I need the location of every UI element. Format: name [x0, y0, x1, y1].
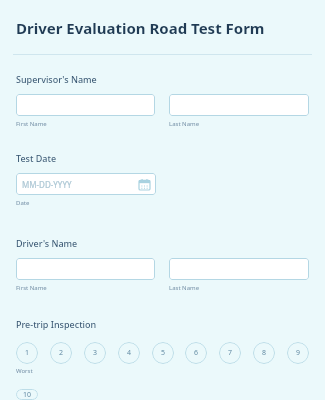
button[interactable]: 8: [253, 342, 275, 364]
button[interactable]: 1: [16, 342, 38, 364]
button[interactable]: [16, 258, 155, 280]
staticText: Driver Evaluation Road Test Form: [16, 18, 265, 38]
button[interactable]: 9: [287, 342, 309, 364]
button[interactable]: MM-DD-YYYY: [16, 173, 156, 195]
button[interactable]: [16, 94, 155, 116]
staticText: 9: [296, 348, 301, 358]
staticText: Supervisor's Name: [16, 73, 97, 85]
button[interactable]: 2: [50, 342, 72, 364]
button[interactable]: 3: [84, 342, 106, 364]
staticText: 4: [127, 348, 132, 358]
button[interactable]: 7: [219, 342, 241, 364]
staticText: 10: [23, 390, 32, 400]
staticText: MM-DD-YYYY: [22, 179, 72, 190]
staticText: Worst: [16, 367, 33, 375]
staticText: 2: [59, 348, 64, 358]
button[interactable]: 6: [185, 342, 207, 364]
staticText: Last Name: [169, 120, 200, 128]
button[interactable]: 10: [16, 389, 38, 400]
button[interactable]: 5: [152, 342, 174, 364]
other: Open calendar: [139, 179, 150, 190]
staticText: 7: [228, 348, 233, 358]
button[interactable]: [169, 94, 309, 116]
staticText: 3: [93, 348, 98, 358]
button[interactable]: 4: [118, 342, 140, 364]
staticText: 1: [25, 348, 30, 358]
staticText: Test Date: [16, 152, 57, 164]
staticText: First Name: [16, 120, 47, 128]
staticText: 6: [194, 348, 199, 358]
staticText: Last Name: [169, 284, 200, 292]
staticText: First Name: [16, 284, 47, 292]
staticText: Date: [16, 199, 30, 207]
staticText: 8: [262, 348, 267, 358]
staticText: Driver's Name: [16, 237, 78, 249]
staticText: 5: [161, 348, 166, 358]
staticText: Pre-trip Inspection: [16, 318, 97, 330]
button[interactable]: [169, 258, 309, 280]
